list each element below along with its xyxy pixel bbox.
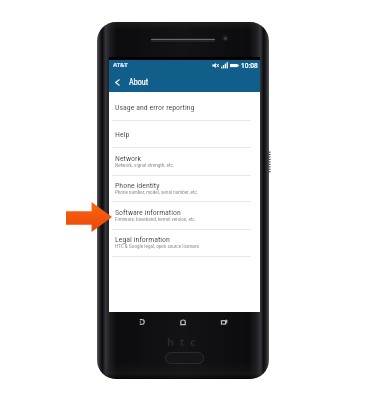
button[interactable]: Navigate up — [109, 70, 260, 92]
staticText: Network — [115, 154, 141, 163]
staticText: HTC & Google legal, open source licenses — [115, 243, 200, 249]
staticText: Network, signal strength, etc. — [115, 162, 175, 168]
button[interactable]: Network — [109, 148, 260, 176]
button[interactable]: Phone identity — [109, 176, 260, 202]
staticText: About — [129, 77, 149, 87]
button[interactable]: Legal information — [109, 230, 260, 257]
staticText: Software information — [115, 208, 181, 217]
button[interactable]: Help — [109, 121, 260, 148]
staticText: Phone identity — [115, 181, 160, 190]
button[interactable]: Recent apps — [214, 313, 234, 331]
staticText: Legal information — [115, 235, 170, 244]
button[interactable]: Navigate up — [111, 75, 123, 89]
button[interactable]: Back — [132, 313, 152, 331]
staticText: Usage and error reporting — [115, 103, 195, 112]
staticText: Help — [115, 130, 130, 139]
button[interactable]: Usage and error reporting — [109, 93, 260, 121]
staticText: htc — [167, 334, 202, 349]
button[interactable]: Home — [173, 313, 193, 331]
staticText: Firmware, baseband, kernel version, etc. — [115, 216, 197, 222]
staticText: AT&T — [113, 61, 128, 69]
button[interactable]: Software information — [109, 202, 260, 230]
staticText: 10:08 — [241, 61, 258, 70]
staticText: Phone number, model, serial number, etc. — [115, 189, 199, 195]
